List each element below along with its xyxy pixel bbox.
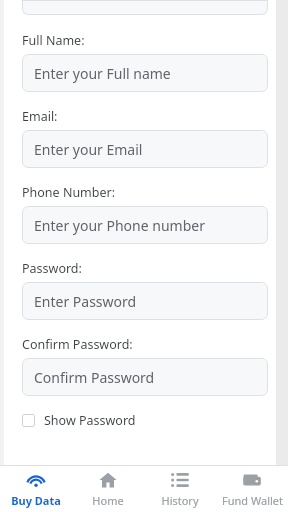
staticText: Buy Data bbox=[11, 493, 61, 508]
button[interactable]: Show Password bbox=[22, 409, 268, 431]
staticText: Enter your Full name bbox=[34, 64, 171, 83]
staticText: Enter Password bbox=[34, 292, 137, 311]
button[interactable]: Buy Data bbox=[0, 466, 72, 512]
staticText: Confirm Password: bbox=[22, 336, 133, 353]
staticText: Email: bbox=[22, 108, 58, 125]
button[interactable]: Enter your Phone number bbox=[22, 206, 268, 244]
button[interactable]: Fund Wallet bbox=[216, 466, 288, 512]
staticText: Phone Number: bbox=[22, 184, 116, 201]
staticText: Show Password bbox=[44, 412, 136, 429]
staticText: Home bbox=[92, 493, 124, 508]
button[interactable]: Home bbox=[72, 466, 144, 512]
button[interactable]: History bbox=[144, 466, 216, 512]
staticText: Enter your Email bbox=[34, 140, 143, 159]
staticText: Password: bbox=[22, 260, 82, 277]
staticText: Fund Wallet bbox=[222, 493, 283, 508]
button[interactable]: Confirm Password bbox=[22, 358, 268, 396]
button[interactable]: Enter your Email bbox=[22, 130, 268, 168]
staticText: Confirm Password bbox=[34, 368, 155, 387]
staticText: Enter your Phone number bbox=[34, 216, 205, 235]
button[interactable]: Enter your Full name bbox=[22, 54, 268, 92]
staticText: History bbox=[161, 493, 199, 508]
button[interactable]: Enter Password bbox=[22, 282, 268, 320]
staticText: Full Name: bbox=[22, 32, 85, 49]
